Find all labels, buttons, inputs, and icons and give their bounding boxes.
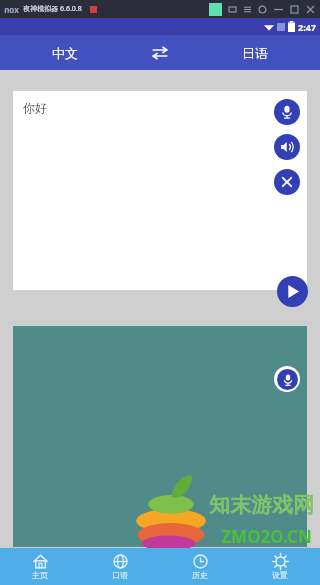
staticText: 中文 <box>52 45 78 61</box>
button[interactable]: Maximize <box>290 5 299 14</box>
button[interactable]: 口语 <box>80 548 160 585</box>
staticText: 你好 <box>23 100 47 115</box>
button[interactable]: Swap languages <box>130 35 190 70</box>
staticText: 历史 <box>192 570 208 580</box>
staticText: 日语 <box>242 45 268 61</box>
button[interactable]: Minimize <box>274 5 283 14</box>
staticText: 2:47 <box>298 21 316 33</box>
staticText: 口语 <box>112 570 128 580</box>
button[interactable]: Translate <box>277 276 308 307</box>
button[interactable]: Voice output <box>274 366 300 392</box>
button[interactable]: Voice input <box>274 99 300 125</box>
staticText: 夜神模拟器 6.6.0.8 <box>23 4 82 14</box>
button[interactable]: Settings <box>258 5 267 14</box>
button[interactable]: Close <box>306 5 315 14</box>
button[interactable]: 主页 <box>0 548 80 585</box>
button[interactable]: Gift <box>228 5 237 14</box>
button[interactable]: Clear text <box>274 169 300 195</box>
button[interactable]: 设置 <box>240 548 320 585</box>
staticText: 主页 <box>32 570 48 580</box>
staticText: 设置 <box>272 570 288 580</box>
button[interactable]: Speak aloud <box>274 134 300 160</box>
button[interactable]: 中文 <box>0 35 130 70</box>
staticText: 知末游戏网 <box>209 492 314 518</box>
staticText: ZMO2O.CN <box>221 525 312 548</box>
button[interactable]: 历史 <box>160 548 240 585</box>
button[interactable]: 日语 <box>190 35 320 70</box>
staticText: nox <box>4 4 19 15</box>
button[interactable]: Menu <box>243 5 252 14</box>
